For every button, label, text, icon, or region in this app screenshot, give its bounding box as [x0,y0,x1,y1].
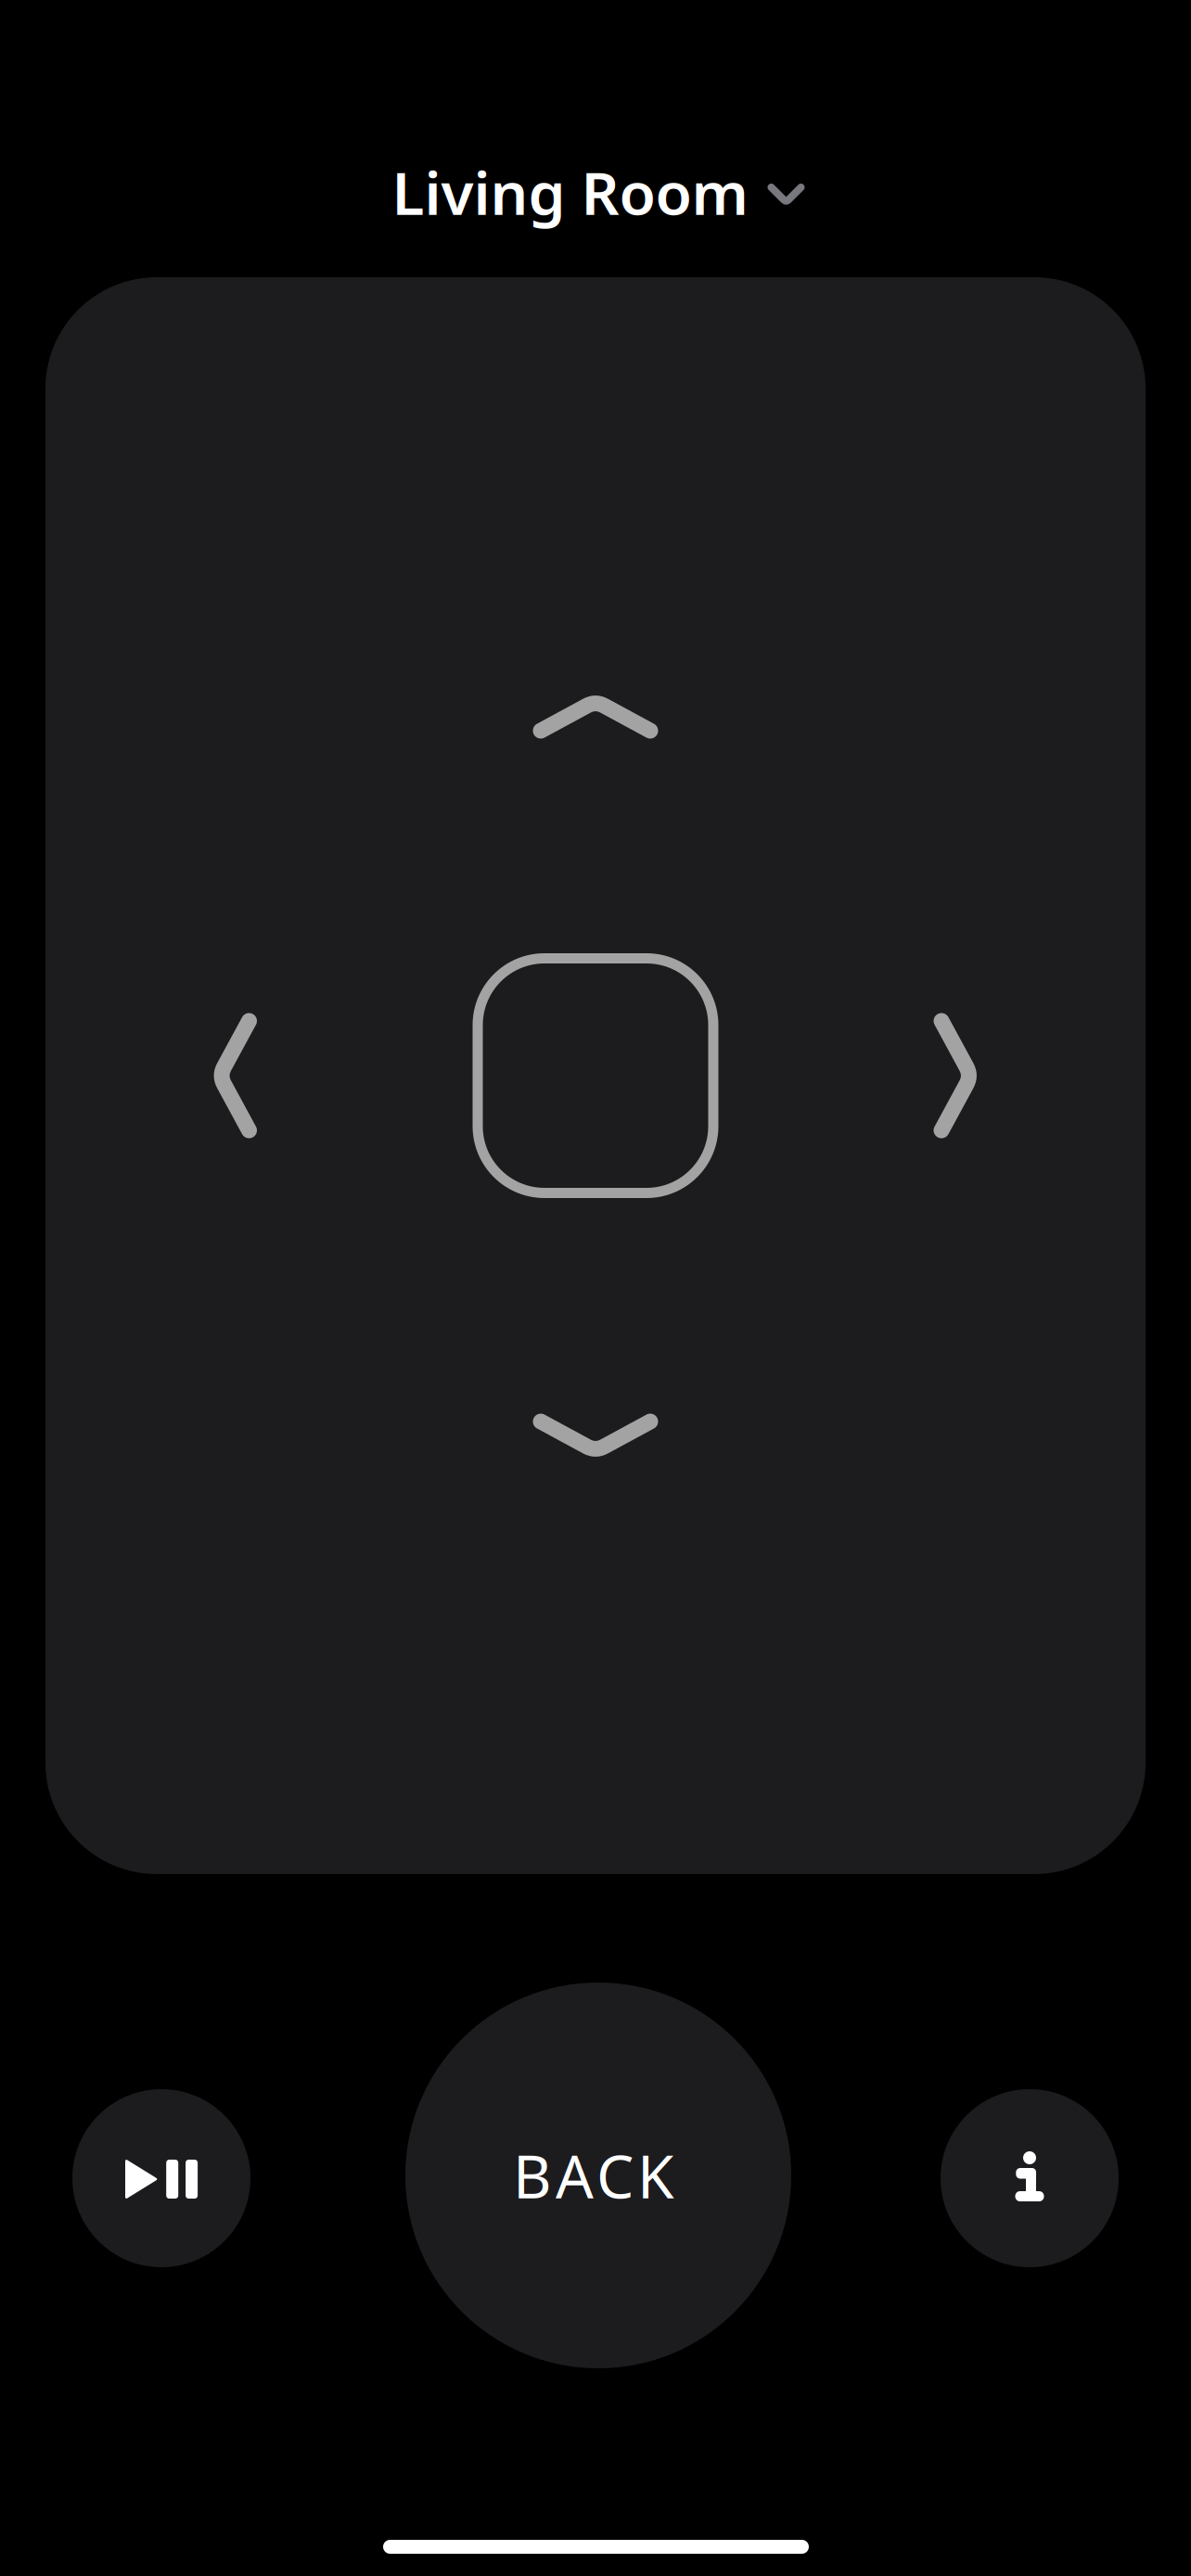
staticText: Living Room [392,153,748,231]
button[interactable]: Down [533,1414,658,1459]
button[interactable]: Info [941,2089,1119,2267]
button[interactable]: Right [934,1013,979,1138]
button[interactable]: Left [211,1013,257,1138]
button[interactable]: BACK [405,1983,791,2368]
button[interactable]: Play/Pause [72,2089,250,2267]
button[interactable]: Up [533,693,658,739]
button[interactable]: Select [473,953,718,1198]
staticText: BACK [513,2136,674,2215]
button[interactable]: Living Room [377,141,820,243]
